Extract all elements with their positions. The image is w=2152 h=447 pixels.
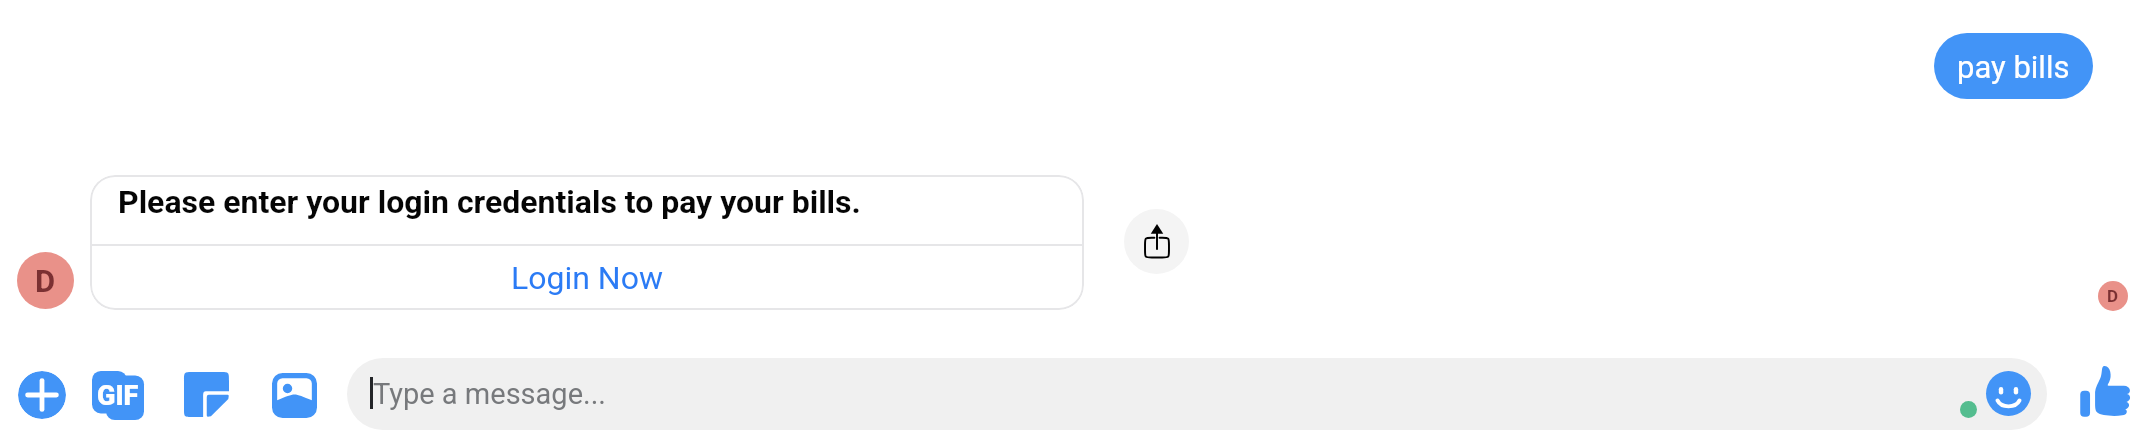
button[interactable]: Add attachment: [18, 371, 66, 419]
button[interactable]: Share: [1124, 209, 1189, 274]
button[interactable]: Choose a GIF: [92, 371, 144, 420]
button[interactable]: Open gallery: [272, 373, 317, 418]
staticText: D: [2107, 286, 2119, 306]
staticText: Type a message...: [373, 377, 606, 411]
staticText: GIF: [97, 380, 139, 412]
staticText: Login Now: [511, 259, 663, 297]
button[interactable]: Login Now: [90, 246, 1084, 310]
button[interactable]: Type a message...: [347, 358, 2047, 430]
button[interactable]: Open emoji picker: [1986, 371, 2031, 416]
staticText: D: [35, 263, 56, 299]
button[interactable]: Send a like: [2078, 363, 2134, 419]
staticText: Please enter your login credentials to p…: [118, 183, 861, 221]
button[interactable]: Choose a sticker: [184, 372, 229, 417]
staticText: pay bills: [1957, 49, 2070, 85]
button[interactable]: pay bills: [1934, 33, 2093, 99]
